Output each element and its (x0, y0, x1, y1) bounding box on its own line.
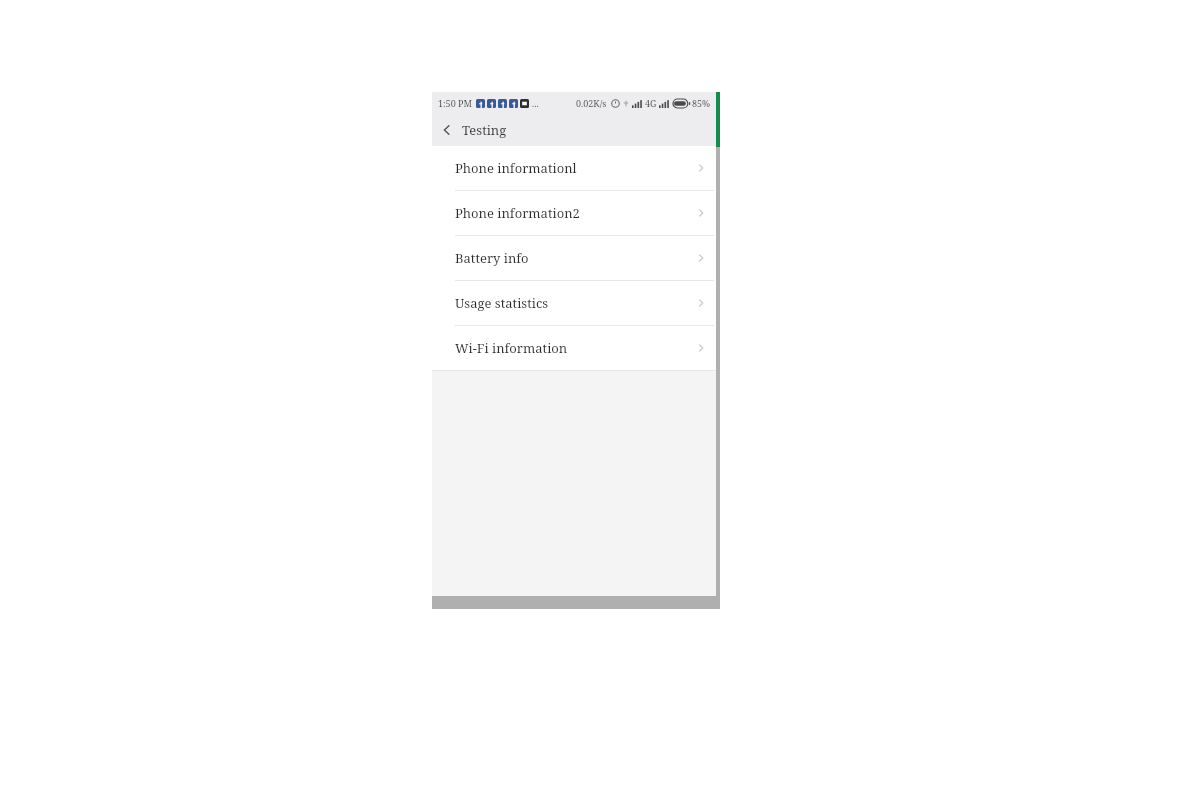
staticText: 1:50 PM (438, 97, 472, 109)
button[interactable]: Phone information2 (432, 191, 720, 235)
button[interactable]: Back (432, 114, 462, 146)
button[interactable]: Usage statistics (432, 281, 720, 325)
staticText: Wi-Fi information (455, 339, 696, 357)
staticText: Battery info (455, 249, 696, 267)
staticText: Phone information2 (455, 204, 696, 222)
staticText: 85% (692, 97, 711, 109)
staticText: Testing (462, 121, 507, 139)
staticText: Phone informationl (455, 159, 696, 177)
staticText: 0.02K/s (576, 97, 607, 109)
staticText: Usage statistics (455, 294, 696, 312)
button[interactable]: Wi-Fi information (432, 326, 720, 370)
staticText: 4G (645, 97, 657, 109)
staticText: ... (532, 97, 539, 109)
button[interactable]: Battery info (432, 236, 720, 280)
button[interactable]: Phone informationl (432, 146, 720, 190)
